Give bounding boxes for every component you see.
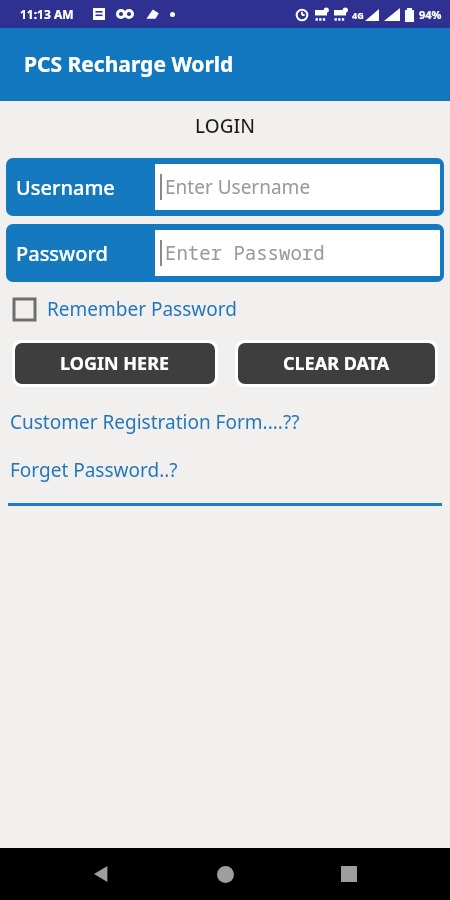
staticText: LOGIN HERE	[60, 351, 170, 376]
staticText: Enter Username	[165, 174, 311, 200]
button[interactable]: Forget Password..?	[10, 457, 450, 483]
button[interactable]: Customer Registration Form....??	[10, 409, 450, 435]
staticText: 4G	[352, 9, 364, 21]
button[interactable]: Back	[78, 851, 124, 897]
button[interactable]: Remember Password	[14, 296, 237, 322]
button[interactable]: CLEAR DATA	[238, 343, 435, 384]
button[interactable]: Username	[6, 158, 444, 216]
button[interactable]: Recents	[326, 851, 372, 897]
staticText: Remember Password	[47, 296, 237, 322]
button[interactable]: Password	[6, 224, 444, 282]
staticText: Username	[16, 174, 115, 201]
staticText: Customer Registration Form....??	[10, 409, 300, 435]
staticText: 94%	[419, 7, 442, 22]
staticText: Password	[16, 240, 108, 267]
staticText: LOGIN	[195, 113, 255, 139]
staticText: Enter Password	[165, 240, 325, 266]
button[interactable]: Home	[202, 851, 248, 897]
staticText: Forget Password..?	[10, 457, 178, 483]
staticText: CLEAR DATA	[283, 351, 390, 376]
staticText: 11:13 AM	[20, 6, 74, 22]
staticText: PCS Recharge World	[24, 50, 234, 79]
button[interactable]: LOGIN HERE	[15, 343, 215, 384]
